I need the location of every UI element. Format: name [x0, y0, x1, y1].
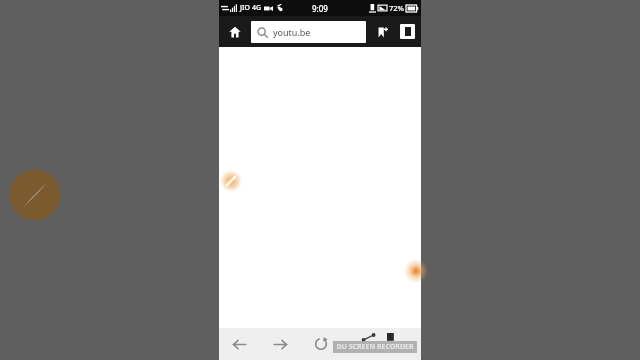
staticText: 72%	[389, 3, 404, 13]
button[interactable]: Menu	[381, 328, 421, 360]
staticText: youtu.be	[273, 26, 311, 38]
staticText: JIO	[240, 3, 250, 13]
button[interactable]: Share	[341, 328, 381, 360]
button[interactable]: Forward	[260, 328, 301, 360]
button[interactable]: Tabs	[400, 24, 415, 39]
button[interactable]: Add bookmark	[372, 22, 392, 42]
button[interactable]: Refresh	[301, 328, 341, 360]
staticText: 9:09	[312, 3, 328, 14]
button[interactable]: Back	[219, 328, 260, 360]
staticText: DU SCREEN RECORDER	[336, 342, 414, 352]
button[interactable]: youtu.be	[251, 21, 366, 43]
button[interactable]: Home	[223, 20, 247, 44]
staticText: 4G	[252, 3, 262, 13]
